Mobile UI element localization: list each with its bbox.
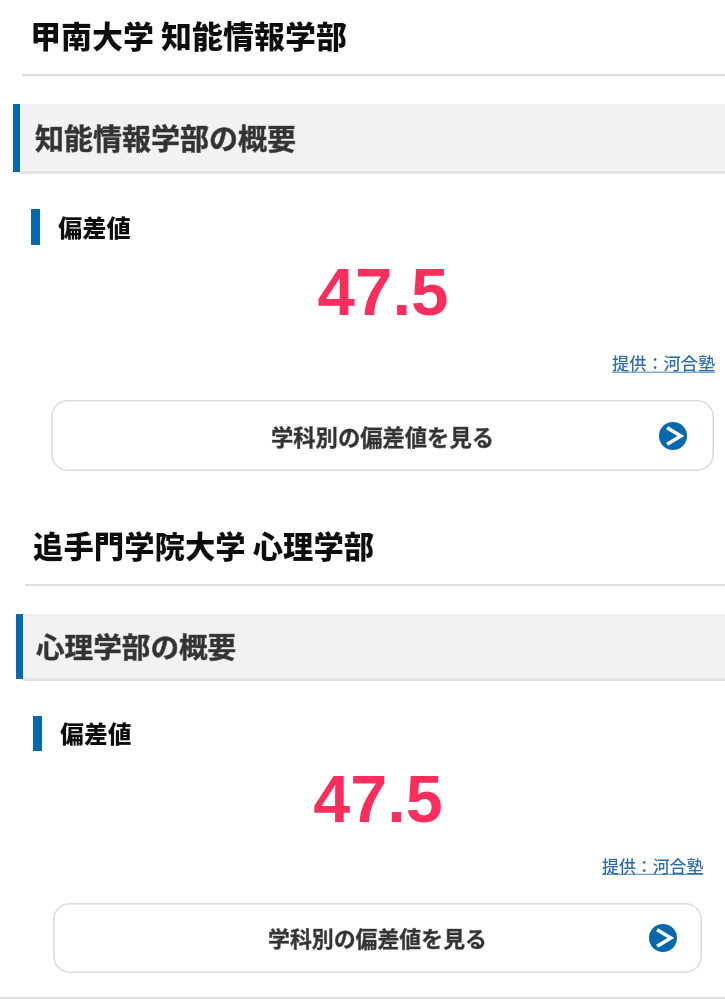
- staticText: 47.5: [317, 254, 449, 329]
- button[interactable]: 提供：河合塾: [612, 350, 716, 375]
- staticText: 偏差値: [60, 715, 132, 750]
- staticText: 知能情報学部の概要: [35, 116, 297, 158]
- button[interactable]: 提供：河合塾: [602, 853, 704, 877]
- staticText: 学科別の偏差値を見る: [271, 420, 494, 452]
- staticText: 学科別の偏差値を見る: [271, 420, 494, 452]
- staticText: 知能情報学部の概要: [35, 116, 297, 158]
- staticText: 心理学部の概要: [36, 625, 237, 666]
- staticText: 学科別の偏差値を見る: [268, 922, 487, 954]
- staticText: 47.5: [313, 762, 443, 836]
- other: 学科別の偏差値を見る: [659, 422, 687, 450]
- button[interactable]: 学科別の偏差値を見る: [51, 400, 714, 471]
- staticText: 甲南大学 知能情報学部: [30, 12, 348, 57]
- staticText: 学科別の偏差値を見る: [268, 922, 487, 954]
- other: 学科別の偏差値を見る: [649, 924, 677, 952]
- staticText: 偏差値: [58, 209, 131, 244]
- button[interactable]: 学科別の偏差値を見る: [53, 903, 702, 973]
- staticText: 追手門学院大学 心理学部: [33, 523, 375, 567]
- staticText: 心理学部の概要: [36, 625, 237, 666]
